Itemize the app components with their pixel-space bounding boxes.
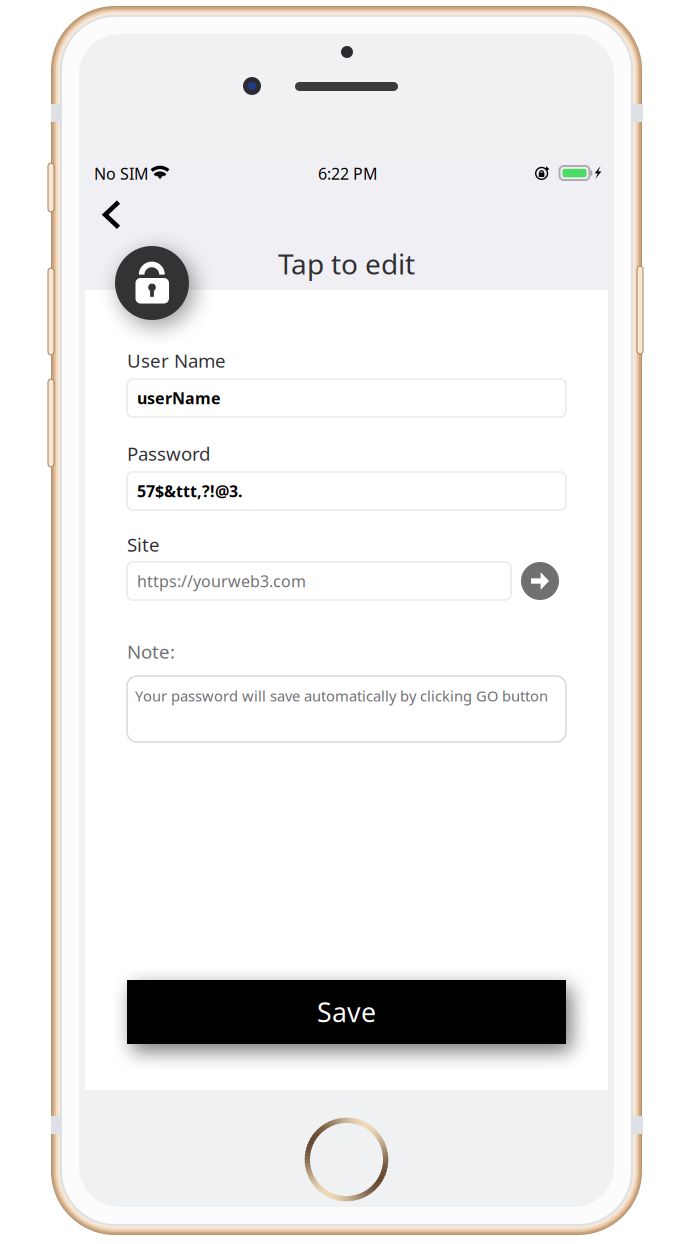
staticText: 6:22 PM (318, 163, 378, 184)
staticText: No SIM (94, 163, 149, 184)
staticText: Note: (127, 639, 175, 664)
button[interactable]: Back (90, 194, 134, 236)
button[interactable]: Go (521, 562, 559, 600)
button[interactable]: Save (127, 980, 566, 1044)
staticText: 57$&ttt,?!@3. (137, 480, 242, 502)
staticText: User Name (127, 348, 226, 373)
staticText: userName (137, 387, 221, 409)
staticText: Your password will save automatically by… (135, 686, 548, 705)
staticText: Tap to edit (278, 245, 415, 282)
staticText: Site (127, 532, 160, 557)
staticText: Save (317, 994, 376, 1030)
staticText: https://yourweb3.com (137, 570, 306, 592)
staticText: Password (127, 441, 210, 466)
